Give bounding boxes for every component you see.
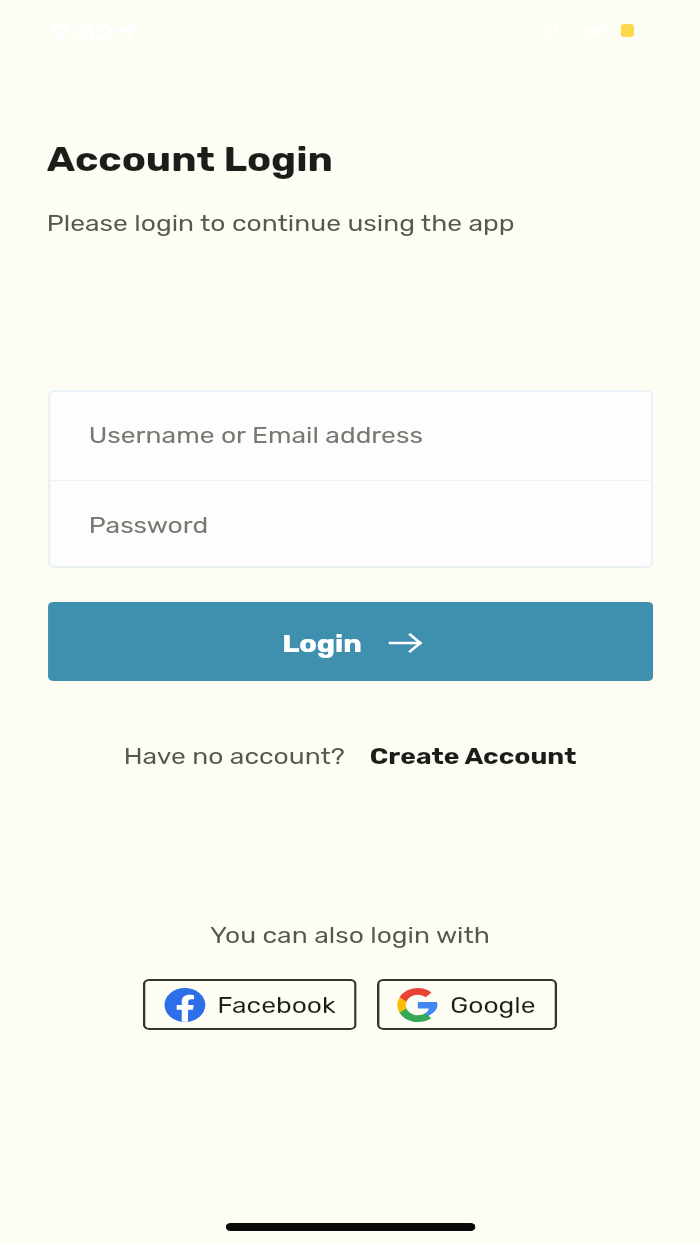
- staticText: Please login to continue using the app: [47, 210, 515, 236]
- staticText: Create Account: [370, 743, 577, 769]
- button[interactable]: Username or Email address: [48, 390, 653, 480]
- button[interactable]: Facebook: [143, 979, 357, 1030]
- button[interactable]: Password: [48, 481, 653, 568]
- button[interactable]: Login: [48, 602, 653, 681]
- staticText: Google: [450, 992, 537, 1018]
- staticText: You can also login with: [0, 922, 700, 948]
- staticText: Username or Email address: [89, 422, 424, 448]
- button[interactable]: Google: [377, 979, 557, 1030]
- other: Location: [115, 23, 137, 39]
- button[interactable]: Create Account: [370, 743, 577, 769]
- staticText: Account Login: [47, 140, 334, 179]
- staticText: Password: [89, 512, 209, 538]
- staticText: Login: [282, 630, 363, 658]
- staticText: Facebook: [217, 992, 336, 1018]
- staticText: Have no account?: [124, 743, 346, 769]
- staticText: 9:32: [50, 18, 115, 48]
